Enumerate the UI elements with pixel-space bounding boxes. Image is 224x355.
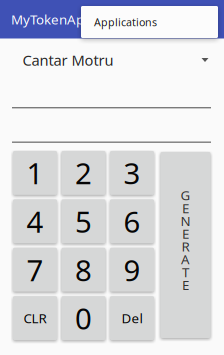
- button[interactable]: 3: [110, 151, 154, 195]
- staticText: E: [182, 199, 189, 217]
- staticText: CLR: [23, 309, 46, 327]
- button[interactable]: 5: [61, 199, 105, 243]
- staticText: E: [182, 225, 189, 242]
- button[interactable]: Applications: [0, 0, 137, 32]
- button[interactable]: Cantar Motru: [0, 0, 186, 22]
- staticText: 5: [75, 202, 92, 241]
- staticText: Cantar Motru: [22, 50, 113, 70]
- staticText: A: [181, 250, 190, 268]
- staticText: 7: [26, 250, 43, 289]
- button[interactable]: 1: [13, 151, 57, 195]
- staticText: 0: [75, 299, 92, 338]
- button[interactable]: 8: [61, 248, 105, 292]
- staticText: R: [181, 237, 189, 255]
- staticText: 6: [123, 202, 140, 241]
- button[interactable]: 0: [61, 296, 105, 340]
- button[interactable]: CLR: [13, 296, 57, 340]
- staticText: MyTokenApp: [11, 10, 92, 28]
- staticText: Del: [121, 309, 142, 327]
- staticText: 8: [75, 250, 92, 289]
- button[interactable]: G: [0, 0, 50, 186]
- staticText: 4: [26, 202, 43, 241]
- staticText: 9: [123, 250, 140, 289]
- staticText: 1: [26, 153, 43, 192]
- button[interactable]: 2: [61, 151, 105, 195]
- button[interactable]: 7: [13, 248, 57, 292]
- staticText: E: [182, 276, 189, 294]
- staticText: 3: [123, 153, 140, 192]
- button[interactable]: 9: [110, 248, 154, 292]
- staticText: 2: [75, 153, 92, 192]
- staticText: Applications: [94, 15, 157, 29]
- staticText: N: [180, 212, 190, 230]
- button[interactable]: Del: [110, 296, 154, 340]
- staticText: G: [180, 186, 190, 204]
- button[interactable]: 4: [13, 199, 57, 243]
- staticText: T: [182, 263, 189, 281]
- button[interactable]: 6: [110, 199, 154, 243]
